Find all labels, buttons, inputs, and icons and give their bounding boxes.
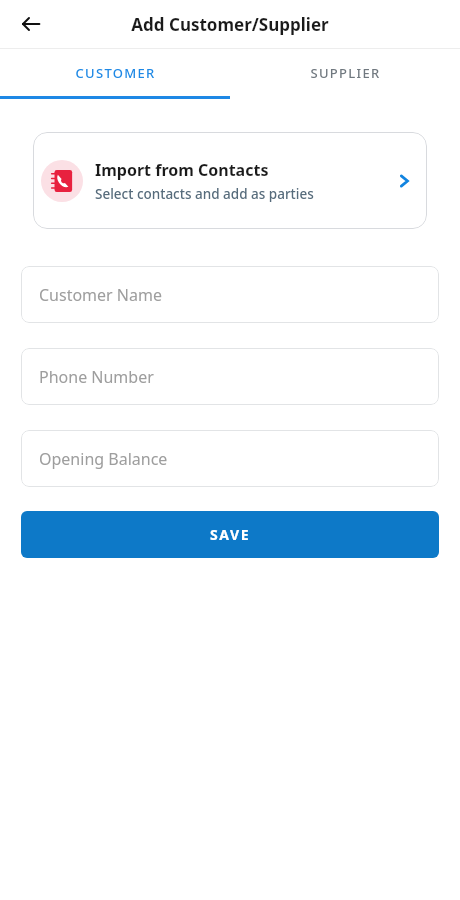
button[interactable]: Customer Name <box>21 266 439 323</box>
staticText: Customer Name <box>39 284 162 306</box>
staticText: Phone Number <box>39 366 154 388</box>
button[interactable]: CUSTOMER <box>0 49 230 96</box>
staticText: SUPPLIER <box>310 64 381 82</box>
staticText: Select contacts and add as parties <box>95 185 314 203</box>
button[interactable]: SAVE <box>21 511 439 558</box>
staticText: CUSTOMER <box>75 64 156 82</box>
button[interactable]: Phone Number <box>21 348 439 405</box>
staticText: Import from Contacts <box>95 159 269 181</box>
staticText: Add Customer/Supplier <box>131 13 329 36</box>
button[interactable]: SUPPLIER <box>230 49 460 96</box>
staticText: Opening Balance <box>39 448 168 470</box>
button[interactable]: Back <box>14 7 48 41</box>
button[interactable]: Import from Contacts <box>33 132 427 229</box>
button[interactable]: Opening Balance <box>21 430 439 487</box>
staticText: SAVE <box>210 525 251 544</box>
